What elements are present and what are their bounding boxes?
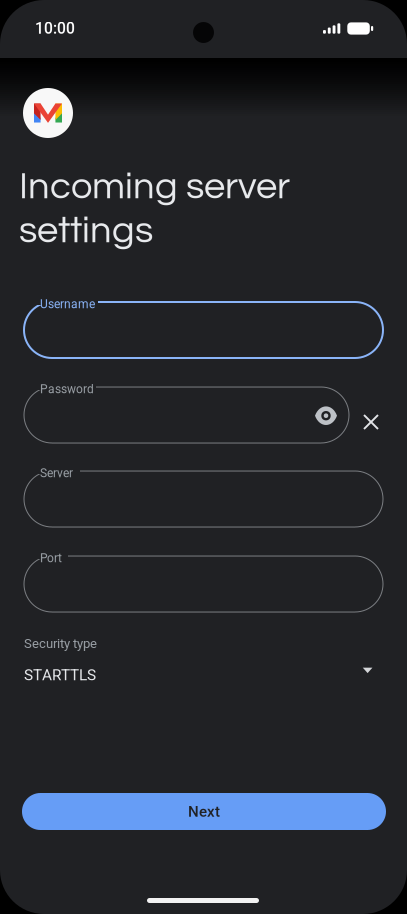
staticText: Next bbox=[188, 803, 220, 820]
staticText: STARTTLS bbox=[24, 666, 96, 684]
button[interactable]: Security type bbox=[24, 636, 383, 688]
staticText: Security type bbox=[24, 636, 97, 651]
staticText: 10:00 bbox=[35, 19, 75, 38]
staticText: settings bbox=[19, 211, 153, 250]
button[interactable]: Show password bbox=[304, 394, 348, 438]
staticText: Password bbox=[40, 382, 94, 396]
button[interactable]: Next bbox=[22, 793, 386, 830]
staticText: Incoming server bbox=[19, 167, 290, 206]
button[interactable]: Clear password bbox=[350, 401, 392, 443]
staticText: Port bbox=[40, 551, 62, 565]
staticText: Server bbox=[40, 466, 73, 480]
staticText: Username bbox=[40, 297, 95, 311]
